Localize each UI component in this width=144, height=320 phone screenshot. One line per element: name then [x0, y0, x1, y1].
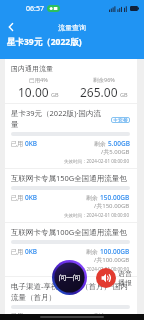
button[interactable]: 互联网卡专属150G全国通用流量包	[5, 169, 137, 222]
button[interactable]: 互联网卡专属100G全国通用流量包	[5, 223, 137, 276]
staticText: 06:57	[26, 4, 44, 14]
staticText: 265.00	[80, 84, 118, 100]
staticText: 0KB	[25, 247, 38, 256]
staticText: 失效时间：2024-02-01 00:00:00	[64, 212, 130, 218]
staticText: 10.00	[18, 84, 49, 100]
staticText: 5.00GB	[108, 139, 130, 148]
staticText: 互联网卡专属100G全国通用流量包	[11, 227, 130, 237]
staticText: 失效时间：2024-02-01 00:00:00	[64, 158, 130, 164]
staticText: 剩余	[94, 312, 108, 314]
staticText: 星卡39元（2022版)	[7, 36, 82, 48]
button[interactable]: Back	[0, 17, 22, 37]
button[interactable]: 语音播报	[96, 268, 116, 288]
staticText: 电子渠道-享视频会员（首月）·国内流量（首月）	[11, 281, 130, 302]
staticText: 0KB	[25, 193, 38, 202]
staticText: 问一问	[59, 273, 80, 282]
staticText: 已用	[11, 140, 25, 148]
staticText: 剩余96%	[93, 76, 115, 84]
staticText: 星卡39元（2022版)·国内流量	[11, 108, 104, 129]
staticText: /共100.00GB	[94, 256, 130, 264]
staticText: /共150.00GB	[94, 202, 130, 210]
staticText: 已用	[11, 194, 25, 202]
staticText: 150.00GB	[100, 193, 130, 202]
staticText: 失效时间：2024-02-01 00:00:00	[64, 266, 130, 272]
button[interactable]: 电子渠道-享视频会员（首月）·国内流量（首月）	[5, 277, 137, 314]
button[interactable]: 星卡39元（2022版)·国内流量	[5, 104, 137, 168]
staticText: 语音	[118, 269, 132, 278]
staticText: 国内通用流量	[11, 64, 53, 73]
button[interactable]: 问一问	[52, 260, 87, 295]
staticText: 剩余	[86, 248, 100, 256]
staticText: 100.00GB	[100, 247, 130, 256]
staticText: 互联网卡专属150G全国通用流量包	[11, 173, 130, 183]
staticText: 已用	[11, 312, 25, 314]
staticText: /共5.00GB	[101, 148, 130, 156]
staticText: 0KB	[25, 139, 38, 148]
staticText: 已用	[11, 248, 25, 256]
staticText: 剩余	[86, 194, 100, 202]
staticText: 已用4%	[29, 76, 48, 84]
staticText: 主套餐	[113, 117, 128, 123]
staticText: 播报	[118, 278, 132, 287]
staticText: 流量查询	[58, 23, 86, 32]
staticText: 剩余	[94, 140, 108, 148]
staticText: GB	[120, 91, 128, 98]
staticText: GB	[51, 91, 59, 98]
